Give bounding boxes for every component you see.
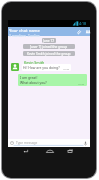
button[interactable]: Attach file [76, 29, 82, 35]
staticText: Hi! How are you doing? [23, 65, 60, 70]
button[interactable]: Back [23, 148, 29, 154]
staticText: June 17 [43, 39, 55, 43]
staticText: Your chat name [9, 28, 40, 34]
button[interactable]: Recent apps [67, 148, 74, 155]
staticText: [user 1] joined the group [30, 45, 68, 49]
button[interactable]: Group members [85, 29, 91, 35]
staticText: 10:30 [63, 67, 70, 70]
staticText: 4:18 [79, 21, 87, 26]
staticText: I am great! [20, 75, 38, 80]
button[interactable]: Record voice message [83, 141, 88, 146]
staticText: Type message [16, 141, 38, 145]
button[interactable]: Home [46, 148, 54, 156]
staticText: 3 members, 2 online [9, 34, 40, 37]
staticText: Kevin Smith joined the group [27, 52, 71, 56]
staticText: 10:32 [78, 82, 85, 85]
staticText: Kevin Smith [24, 60, 45, 65]
staticText: What about you? [20, 80, 47, 85]
button[interactable]: Emoji [10, 141, 14, 145]
